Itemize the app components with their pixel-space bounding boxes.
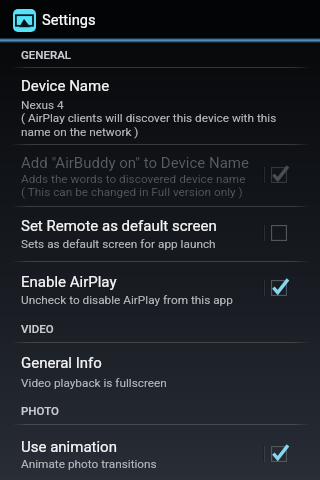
button[interactable]	[0, 145, 320, 206]
staticText: Set Remote as default screen	[21, 217, 217, 235]
button[interactable]	[0, 68, 320, 144]
button[interactable]: Checked	[263, 165, 308, 185]
staticText: name on the network )	[21, 125, 139, 139]
staticText: PHOTO	[21, 404, 59, 417]
button[interactable]	[0, 262, 320, 315]
staticText: Animate photo transitions	[21, 457, 157, 471]
button[interactable]: Settings	[0, 0, 320, 39]
staticText: Use animation	[21, 438, 117, 456]
button[interactable]	[0, 425, 320, 478]
button[interactable]	[0, 343, 320, 396]
staticText: VIDEO	[21, 322, 54, 335]
staticText: Device Name	[21, 77, 110, 95]
staticText: Enable AirPlay	[21, 273, 117, 291]
staticText: Settings	[42, 11, 96, 28]
button[interactable]: Checked	[263, 278, 308, 298]
staticText: ( This can be changed in Full version on…	[21, 185, 243, 199]
staticText: Sets as default screen for app launch	[21, 237, 216, 251]
staticText: Adds the words to discovered device name	[21, 172, 246, 186]
button[interactable]	[0, 207, 320, 261]
staticText: GENERAL	[21, 48, 72, 61]
staticText: ( AirPlay clients will discover this dev…	[21, 111, 277, 125]
staticText: General Info	[21, 354, 102, 372]
staticText: Uncheck to disable AirPlay from this app	[21, 293, 233, 307]
staticText: Video playback is fullscreen	[21, 376, 167, 390]
staticText: Add "AirBuddy on" to Device Name	[21, 154, 249, 172]
staticText: Nexus 4	[21, 98, 64, 112]
button[interactable]: Unchecked	[263, 223, 308, 243]
button[interactable]: Checked	[263, 444, 308, 464]
